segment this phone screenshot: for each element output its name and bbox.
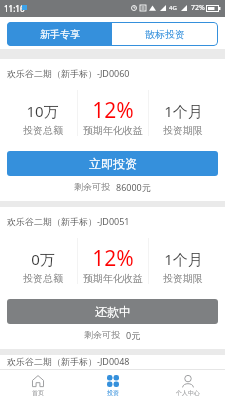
staticText: 10万 [26, 101, 59, 121]
staticText: 86000元 [116, 181, 151, 193]
staticText: 4G [169, 4, 177, 12]
button[interactable]: 新手专享 [7, 22, 112, 46]
button[interactable]: 立即投资 [7, 151, 218, 176]
staticText: 欢乐谷二期（新手标）-JD0060 [7, 67, 130, 79]
staticText: 投资 [107, 389, 119, 397]
staticText: 新手专享 [40, 28, 80, 41]
staticText: 剩余可投 [74, 181, 110, 192]
staticText: 0万 [31, 249, 55, 269]
staticText: 欢乐谷二期（新手标）-JD0051 [7, 215, 130, 227]
button[interactable]: 投资 [75, 370, 150, 400]
button[interactable]: 首页 [0, 370, 75, 400]
staticText: 还款中 [95, 304, 131, 319]
staticText: 12% [92, 96, 134, 125]
staticText: 0元 [126, 329, 141, 341]
staticText: 1个月 [164, 101, 203, 121]
staticText: 立即投资 [89, 156, 137, 171]
staticText: 首页 [32, 389, 44, 397]
staticText: 投资期限 [163, 124, 203, 137]
button[interactable]: 散标投资 [112, 22, 218, 46]
staticText: 预期年化收益 [83, 272, 143, 285]
staticText: 欢乐谷二期（新手标）-JD0048 [7, 355, 130, 367]
staticText: 散标投资 [145, 28, 185, 41]
staticText: 11:16 [4, 3, 25, 14]
staticText: 1个月 [164, 249, 203, 269]
staticText: 个人中心 [176, 389, 200, 397]
button[interactable]: 还款中 [7, 299, 218, 324]
staticText: 投资总额 [23, 272, 63, 285]
staticText: 投资总额 [23, 124, 63, 137]
button[interactable]: 个人中心 [150, 370, 225, 400]
staticText: 12% [92, 244, 134, 273]
staticText: 投资期限 [163, 272, 203, 285]
staticText: 预期年化收益 [83, 124, 143, 137]
staticText: 72% [191, 3, 205, 13]
staticText: 剩余可投 [84, 329, 120, 340]
